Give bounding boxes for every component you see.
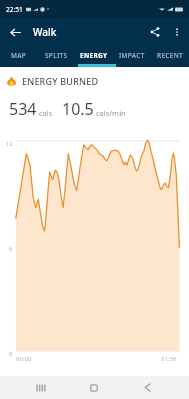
staticText: 6: [9, 245, 13, 252]
staticText: 51:50: [161, 355, 177, 363]
button[interactable]: Home: [73, 376, 115, 399]
staticText: cals/min: [96, 108, 126, 118]
staticText: SPLITS: [45, 51, 68, 60]
button[interactable]: MAP: [0, 46, 37, 67]
button[interactable]: Navigate up: [5, 22, 25, 42]
staticText: 10.5: [62, 98, 94, 120]
staticText: cals: [39, 108, 53, 118]
button[interactable]: More options: [167, 22, 187, 42]
staticText: MAP: [11, 51, 27, 60]
staticText: 534: [9, 98, 37, 120]
staticText: IMPACT: [119, 51, 145, 60]
staticText: 0: [9, 350, 13, 357]
button[interactable]: Share: [145, 22, 165, 42]
button[interactable]: IMPACT: [113, 46, 151, 67]
button[interactable]: Recent apps: [20, 376, 62, 399]
button[interactable]: SPLITS: [37, 46, 75, 67]
staticText: 00:00: [16, 355, 32, 363]
button[interactable]: Back: [126, 376, 168, 399]
staticText: ENERGY: [80, 51, 108, 60]
staticText: 12: [6, 140, 13, 147]
button[interactable]: ENERGY: [75, 46, 113, 67]
button[interactable]: RECENT: [151, 46, 189, 67]
staticText: 22:51: [6, 5, 23, 14]
staticText: ENERGY BURNED: [22, 75, 99, 87]
staticText: Walk: [33, 25, 57, 39]
staticText: RECENT: [157, 51, 183, 60]
